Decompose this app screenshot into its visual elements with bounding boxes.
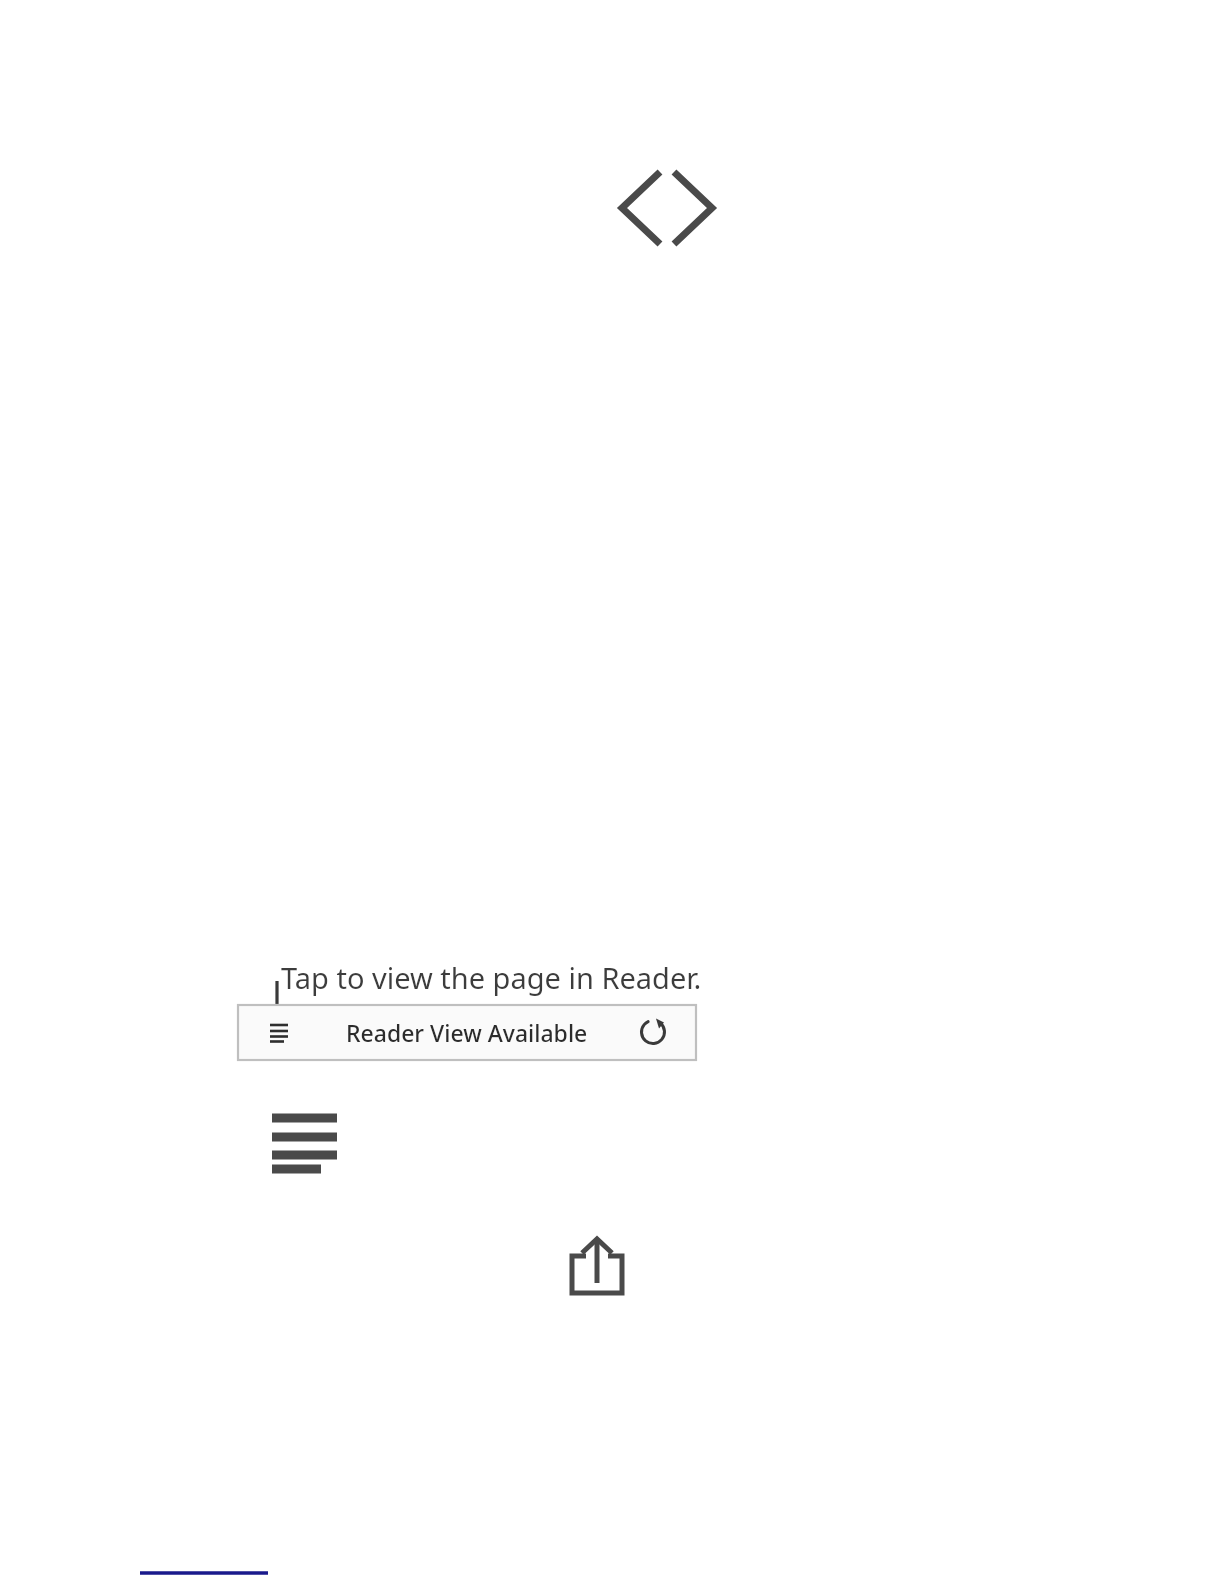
button[interactable]: Reader View Available address bar xyxy=(238,1005,696,1061)
button[interactable]: Previous page xyxy=(600,168,662,250)
button[interactable]: Reload page xyxy=(630,1008,678,1056)
button[interactable]: Next page xyxy=(668,168,730,250)
button[interactable]: Link xyxy=(138,1554,272,1582)
button[interactable]: Share xyxy=(560,1230,636,1306)
button[interactable]: Show Reader View xyxy=(258,1012,304,1054)
button[interactable]: Reader xyxy=(262,1104,350,1184)
